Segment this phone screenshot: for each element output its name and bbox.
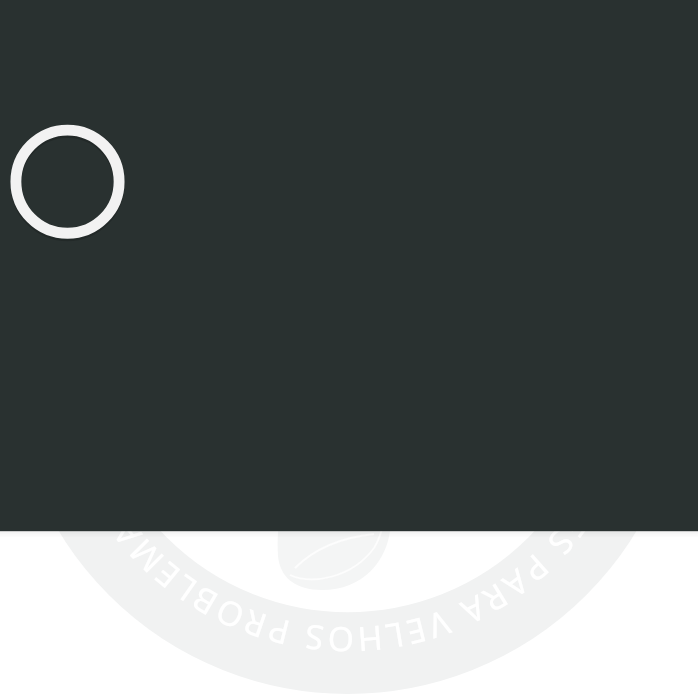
other: Loading xyxy=(10,124,125,239)
other: Loading splash screen xyxy=(0,0,700,700)
